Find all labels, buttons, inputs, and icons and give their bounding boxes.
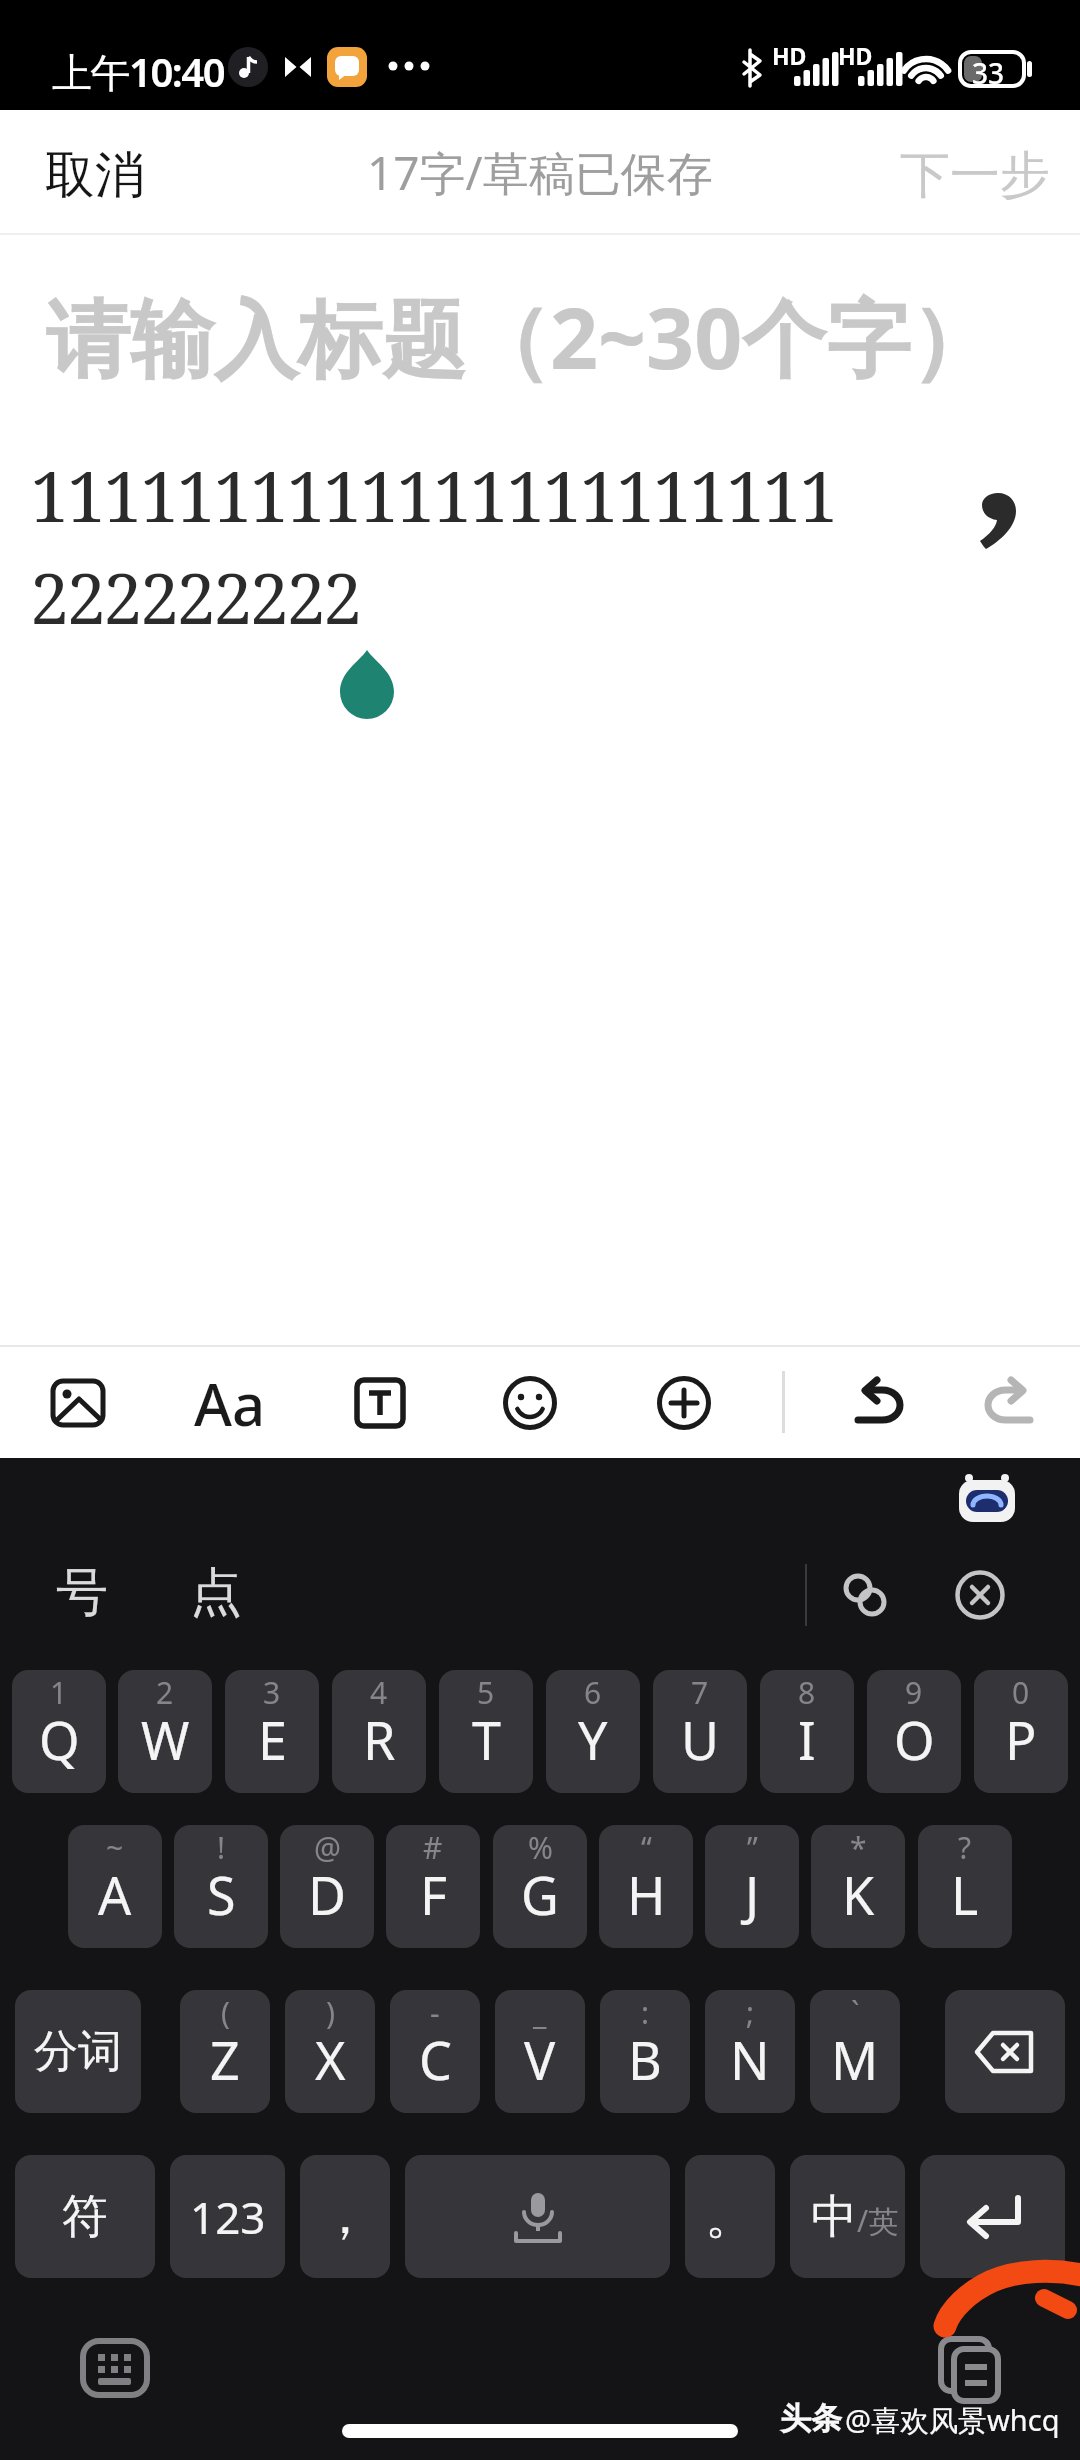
button[interactable]: ; bbox=[705, 1990, 795, 2113]
button[interactable] bbox=[340, 1363, 420, 1443]
staticText: ” bbox=[747, 1827, 758, 1868]
staticText: 7 bbox=[691, 1672, 709, 1713]
staticText: 下一步 bbox=[900, 144, 1050, 207]
staticText: A bbox=[98, 1859, 132, 1930]
button[interactable]: ` bbox=[810, 1990, 900, 2113]
staticText: 中 bbox=[811, 2188, 857, 2246]
staticText: 头条 bbox=[780, 2399, 842, 2438]
staticText: ! bbox=[217, 1827, 226, 1868]
staticText: _ bbox=[533, 1992, 547, 2033]
staticText: O bbox=[894, 1704, 935, 1775]
staticText: 0 bbox=[1012, 1672, 1030, 1713]
staticText: ? bbox=[958, 1827, 972, 1868]
button[interactable] bbox=[838, 1359, 922, 1443]
button[interactable]: 符 bbox=[15, 2155, 155, 2278]
staticText: - bbox=[430, 1992, 440, 2033]
button[interactable]: 6 bbox=[546, 1670, 640, 1793]
staticText: ; bbox=[746, 1992, 755, 2033]
button[interactable]: 2 bbox=[118, 1670, 212, 1793]
staticText: 点 bbox=[190, 1560, 242, 1626]
button[interactable]: ! bbox=[174, 1825, 268, 1948]
button[interactable] bbox=[966, 1359, 1050, 1443]
button[interactable] bbox=[945, 1990, 1065, 2113]
button[interactable]: 5 bbox=[439, 1670, 533, 1793]
staticText: ( bbox=[221, 1992, 230, 2033]
staticText: H bbox=[627, 1859, 666, 1930]
staticText: 33 bbox=[972, 54, 1005, 92]
staticText: 3 bbox=[263, 1672, 281, 1713]
staticText: 取消 bbox=[45, 144, 145, 207]
staticText: /英 bbox=[857, 2200, 899, 2241]
button[interactable]: Aa bbox=[185, 1363, 275, 1443]
button[interactable]: 123 bbox=[170, 2155, 285, 2278]
button[interactable]: ) bbox=[285, 1990, 375, 2113]
staticText: T bbox=[472, 1704, 501, 1775]
button[interactable] bbox=[945, 1562, 1015, 1628]
staticText: 17字/草稿已保存 bbox=[367, 141, 713, 204]
button[interactable]: - bbox=[390, 1990, 480, 2113]
button[interactable]: ” bbox=[705, 1825, 799, 1948]
button[interactable]: : bbox=[600, 1990, 690, 2113]
button[interactable]: 下一步 bbox=[895, 140, 1055, 210]
staticText: R bbox=[363, 1704, 396, 1775]
staticText: 。 bbox=[705, 2185, 755, 2248]
staticText: V bbox=[524, 2024, 556, 2095]
button[interactable]: 中 bbox=[790, 2155, 905, 2278]
staticText: # bbox=[423, 1827, 443, 1868]
staticText: 4 bbox=[370, 1672, 388, 1713]
staticText: N bbox=[730, 2024, 770, 2095]
button[interactable]: 号 bbox=[36, 1552, 128, 1634]
button[interactable]: % bbox=[493, 1825, 587, 1948]
button[interactable]: 。 bbox=[685, 2155, 775, 2278]
button[interactable] bbox=[70, 2328, 160, 2408]
button[interactable]: 点 bbox=[170, 1552, 262, 1634]
staticText: X bbox=[315, 2024, 346, 2095]
staticText: 2 bbox=[156, 1672, 174, 1713]
staticText: 分词 bbox=[34, 2024, 122, 2079]
button[interactable]: 7 bbox=[653, 1670, 747, 1793]
button[interactable] bbox=[38, 1363, 118, 1443]
button[interactable]: 取消 bbox=[30, 140, 160, 210]
staticText: U bbox=[681, 1704, 720, 1775]
staticText: Z bbox=[210, 2024, 240, 2095]
button[interactable]: 8 bbox=[760, 1670, 854, 1793]
button[interactable]: _ bbox=[495, 1990, 585, 2113]
button[interactable]: ， bbox=[300, 2155, 390, 2278]
button[interactable] bbox=[830, 1562, 900, 1628]
staticText: @喜欢风景whcq bbox=[845, 2400, 1060, 2440]
staticText: % bbox=[528, 1827, 553, 1868]
button[interactable]: @ bbox=[280, 1825, 374, 1948]
staticText: 123 bbox=[190, 2187, 266, 2247]
button[interactable]: 4 bbox=[332, 1670, 426, 1793]
staticText: B bbox=[628, 2024, 662, 2095]
button[interactable] bbox=[925, 2328, 1015, 2412]
staticText: Y bbox=[578, 1704, 608, 1775]
staticText: HD bbox=[772, 40, 807, 71]
staticText: ， bbox=[320, 2185, 370, 2248]
button[interactable]: 3 bbox=[225, 1670, 319, 1793]
button[interactable]: ( bbox=[180, 1990, 270, 2113]
button[interactable]: 0 bbox=[974, 1670, 1068, 1793]
button[interactable] bbox=[405, 2155, 670, 2278]
button[interactable]: 9 bbox=[867, 1670, 961, 1793]
staticText: M bbox=[831, 2024, 879, 2095]
staticText: 9 bbox=[905, 1672, 923, 1713]
button[interactable]: “ bbox=[599, 1825, 693, 1948]
button[interactable]: # bbox=[386, 1825, 480, 1948]
button[interactable] bbox=[490, 1363, 570, 1443]
button[interactable] bbox=[644, 1363, 724, 1443]
button[interactable]: 分词 bbox=[15, 1990, 141, 2113]
staticText: : bbox=[641, 1992, 650, 2033]
staticText: 上午10:40 bbox=[52, 44, 225, 99]
staticText: 1111111111111111111111 bbox=[30, 447, 836, 542]
button[interactable]: ? bbox=[918, 1825, 1012, 1948]
staticText: Q bbox=[39, 1704, 80, 1775]
staticText: 5 bbox=[477, 1672, 495, 1713]
staticText: ` bbox=[851, 1992, 860, 2033]
button[interactable]: 1 bbox=[12, 1670, 106, 1793]
button[interactable]: ~ bbox=[68, 1825, 162, 1948]
staticText: * bbox=[850, 1827, 867, 1868]
button[interactable]: * bbox=[811, 1825, 905, 1948]
staticText: 8 bbox=[798, 1672, 816, 1713]
button[interactable] bbox=[920, 2155, 1065, 2278]
